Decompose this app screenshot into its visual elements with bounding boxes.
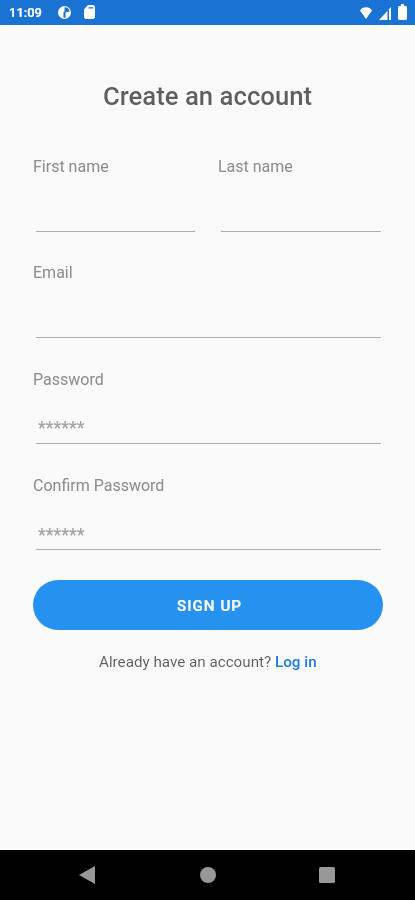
button[interactable]: Log in [275,653,317,671]
staticText: Last name [218,157,293,176]
button[interactable]: Back [47,850,127,900]
button[interactable]: Home [168,850,248,900]
button[interactable]: Recent apps [287,850,367,900]
staticText: ****** [38,524,85,545]
staticText: Create an account [0,81,415,111]
staticText: Email [33,263,73,282]
staticText: Password [33,370,104,389]
staticText: Confirm Password [33,476,165,495]
staticText: 11:09 [9,5,43,20]
button[interactable]: SIGN UP [33,580,383,630]
staticText: Already have an account? [99,653,275,671]
staticText: ****** [38,417,85,438]
staticText: SIGN UP [177,597,242,615]
staticText: First name [33,157,109,176]
